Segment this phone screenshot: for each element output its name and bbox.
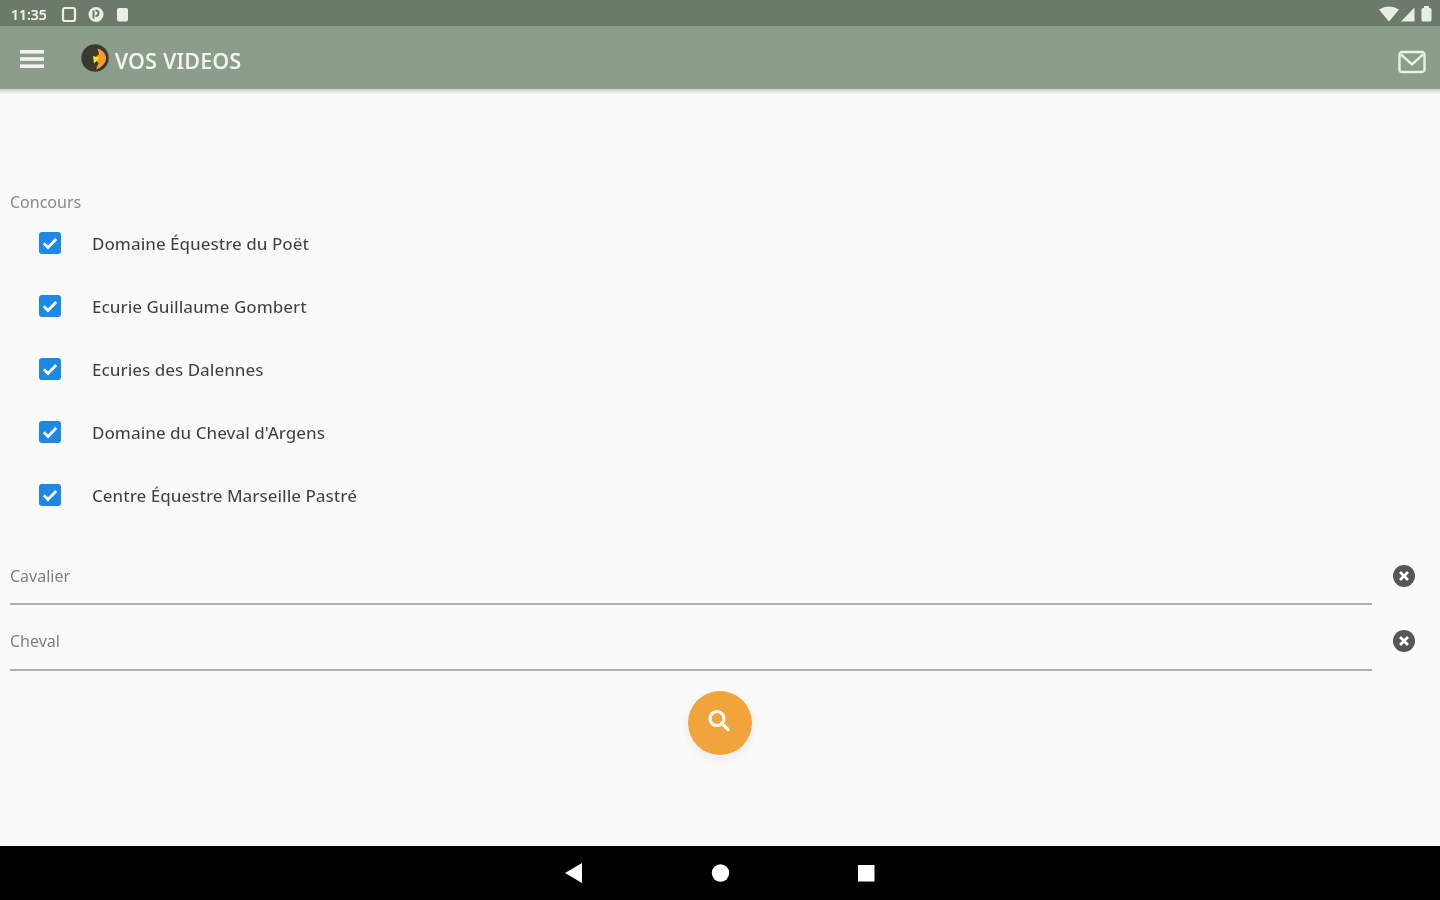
staticText: Concours [10, 191, 82, 213]
button[interactable]: Centre Équestre Marseille Pastré [28, 471, 548, 519]
button[interactable] [1388, 38, 1436, 86]
staticText: Cheval [10, 630, 60, 652]
button[interactable] [688, 691, 752, 755]
button[interactable] [8, 34, 56, 82]
staticText: Cavalier [10, 565, 71, 587]
button[interactable]: Domaine du Cheval d'Argens [28, 408, 548, 456]
button[interactable] [696, 849, 744, 897]
staticText: Centre Équestre Marseille Pastré [92, 484, 357, 507]
staticText: Domaine Équestre du Poët [92, 232, 309, 255]
button[interactable] [549, 849, 597, 897]
staticText: VOS VIDEOS [115, 47, 242, 76]
button[interactable]: Ecuries des Dalennes [28, 345, 548, 393]
staticText: Ecurie Guillaume Gombert [92, 295, 307, 318]
staticText: 11:35 [11, 5, 47, 24]
button[interactable] [1390, 627, 1418, 655]
staticText: Ecuries des Dalennes [92, 358, 264, 381]
staticText: Domaine du Cheval d'Argens [92, 421, 326, 444]
button[interactable] [1390, 562, 1418, 590]
button[interactable] [842, 849, 890, 897]
button[interactable]: Ecurie Guillaume Gombert [28, 282, 548, 330]
button[interactable]: Domaine Équestre du Poët [28, 219, 548, 267]
